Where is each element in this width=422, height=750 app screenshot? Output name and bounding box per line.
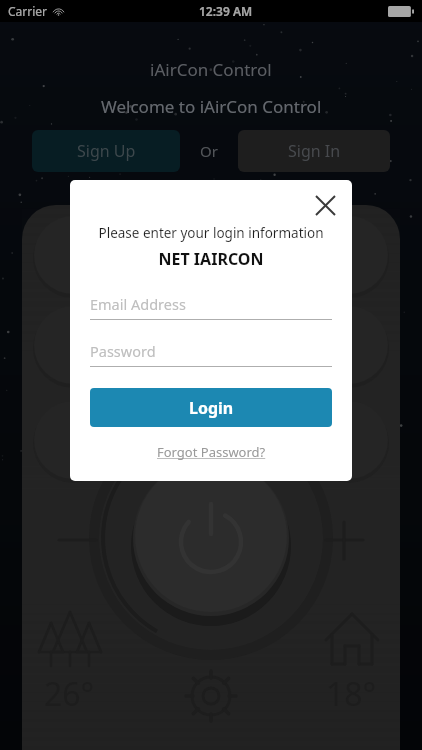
button[interactable]: Sign In (238, 130, 390, 172)
button[interactable]: Email Address (90, 294, 332, 320)
button[interactable]: Sign Up (32, 130, 180, 172)
staticText: NET IAIRCON (70, 248, 352, 270)
staticText: Please enter your login information (80, 224, 342, 242)
staticText: Sign In (288, 140, 341, 162)
button[interactable]: Forgot Password? (70, 439, 352, 465)
staticText: Password (90, 341, 156, 361)
staticText: Or (200, 141, 218, 161)
staticText: Forgot Password? (157, 443, 266, 461)
button[interactable]: Close (306, 186, 344, 224)
staticText: Login (189, 397, 234, 419)
staticText: Carrier (8, 3, 48, 19)
staticText: Welcome to iAirCon Control (101, 95, 322, 118)
button[interactable]: Login (90, 388, 332, 427)
staticText: Sign Up (77, 140, 136, 162)
button[interactable]: Password (90, 341, 332, 367)
staticText: iAirCon Control (150, 58, 272, 81)
staticText: 12:39 AM (199, 3, 253, 19)
staticText: Email Address (90, 294, 186, 314)
